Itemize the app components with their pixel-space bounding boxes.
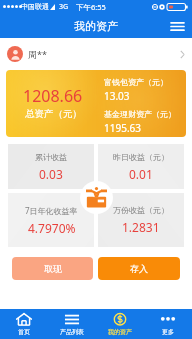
staticText: 中国联通 [21,2,49,11]
staticText: 累计收益 [35,152,67,162]
staticText: 13.03 [104,89,130,103]
button[interactable]: 存入 [98,257,180,280]
button[interactable]: 我的资产 [96,309,144,339]
staticText: 下午6:55 [76,2,106,12]
staticText: 周** [28,48,47,60]
staticText: 万份收益（元） [113,205,169,215]
staticText: 0.01 [129,166,153,182]
button[interactable]: 产品列表 [48,309,96,339]
staticText: 0.03 [39,166,63,182]
staticText: 总资产（元） [25,108,82,120]
staticText: 7日年化收益率 [25,205,78,216]
button[interactable]: 万份收益（元） [98,193,184,247]
staticText: 存入 [130,263,148,274]
staticText: 更多 [162,328,174,336]
button[interactable]: Menu [167,16,187,36]
staticText: 取现 [44,263,62,274]
staticText: 昨日收益（元） [113,152,169,162]
button[interactable]: 1208.66 [6,70,186,137]
staticText: 我的资产 [74,19,118,33]
staticText: 4.7970% [28,220,76,236]
staticText: 基金理财资产（元） [104,109,176,119]
staticText: 首页 [18,328,30,336]
button[interactable]: 累计收益 [8,144,94,189]
staticText: 1.2831 [122,219,160,235]
staticText: 1195.63 [104,121,141,135]
button[interactable]: 周** [0,38,192,70]
button[interactable]: 首页 [0,309,48,339]
button[interactable]: 7日年化收益率 [8,193,94,247]
staticText: 3G [59,2,69,12]
staticText: 富钱包资产（元） [104,77,168,87]
staticText: 1208.66 [23,85,83,107]
button[interactable]: 取现 [12,257,93,280]
button[interactable]: Wallet [80,181,113,214]
staticText: 我的资产 [108,328,132,336]
staticText: 产品列表 [60,328,84,336]
button[interactable]: 昨日收益（元） [98,144,184,189]
button[interactable]: 更多 [144,309,192,339]
